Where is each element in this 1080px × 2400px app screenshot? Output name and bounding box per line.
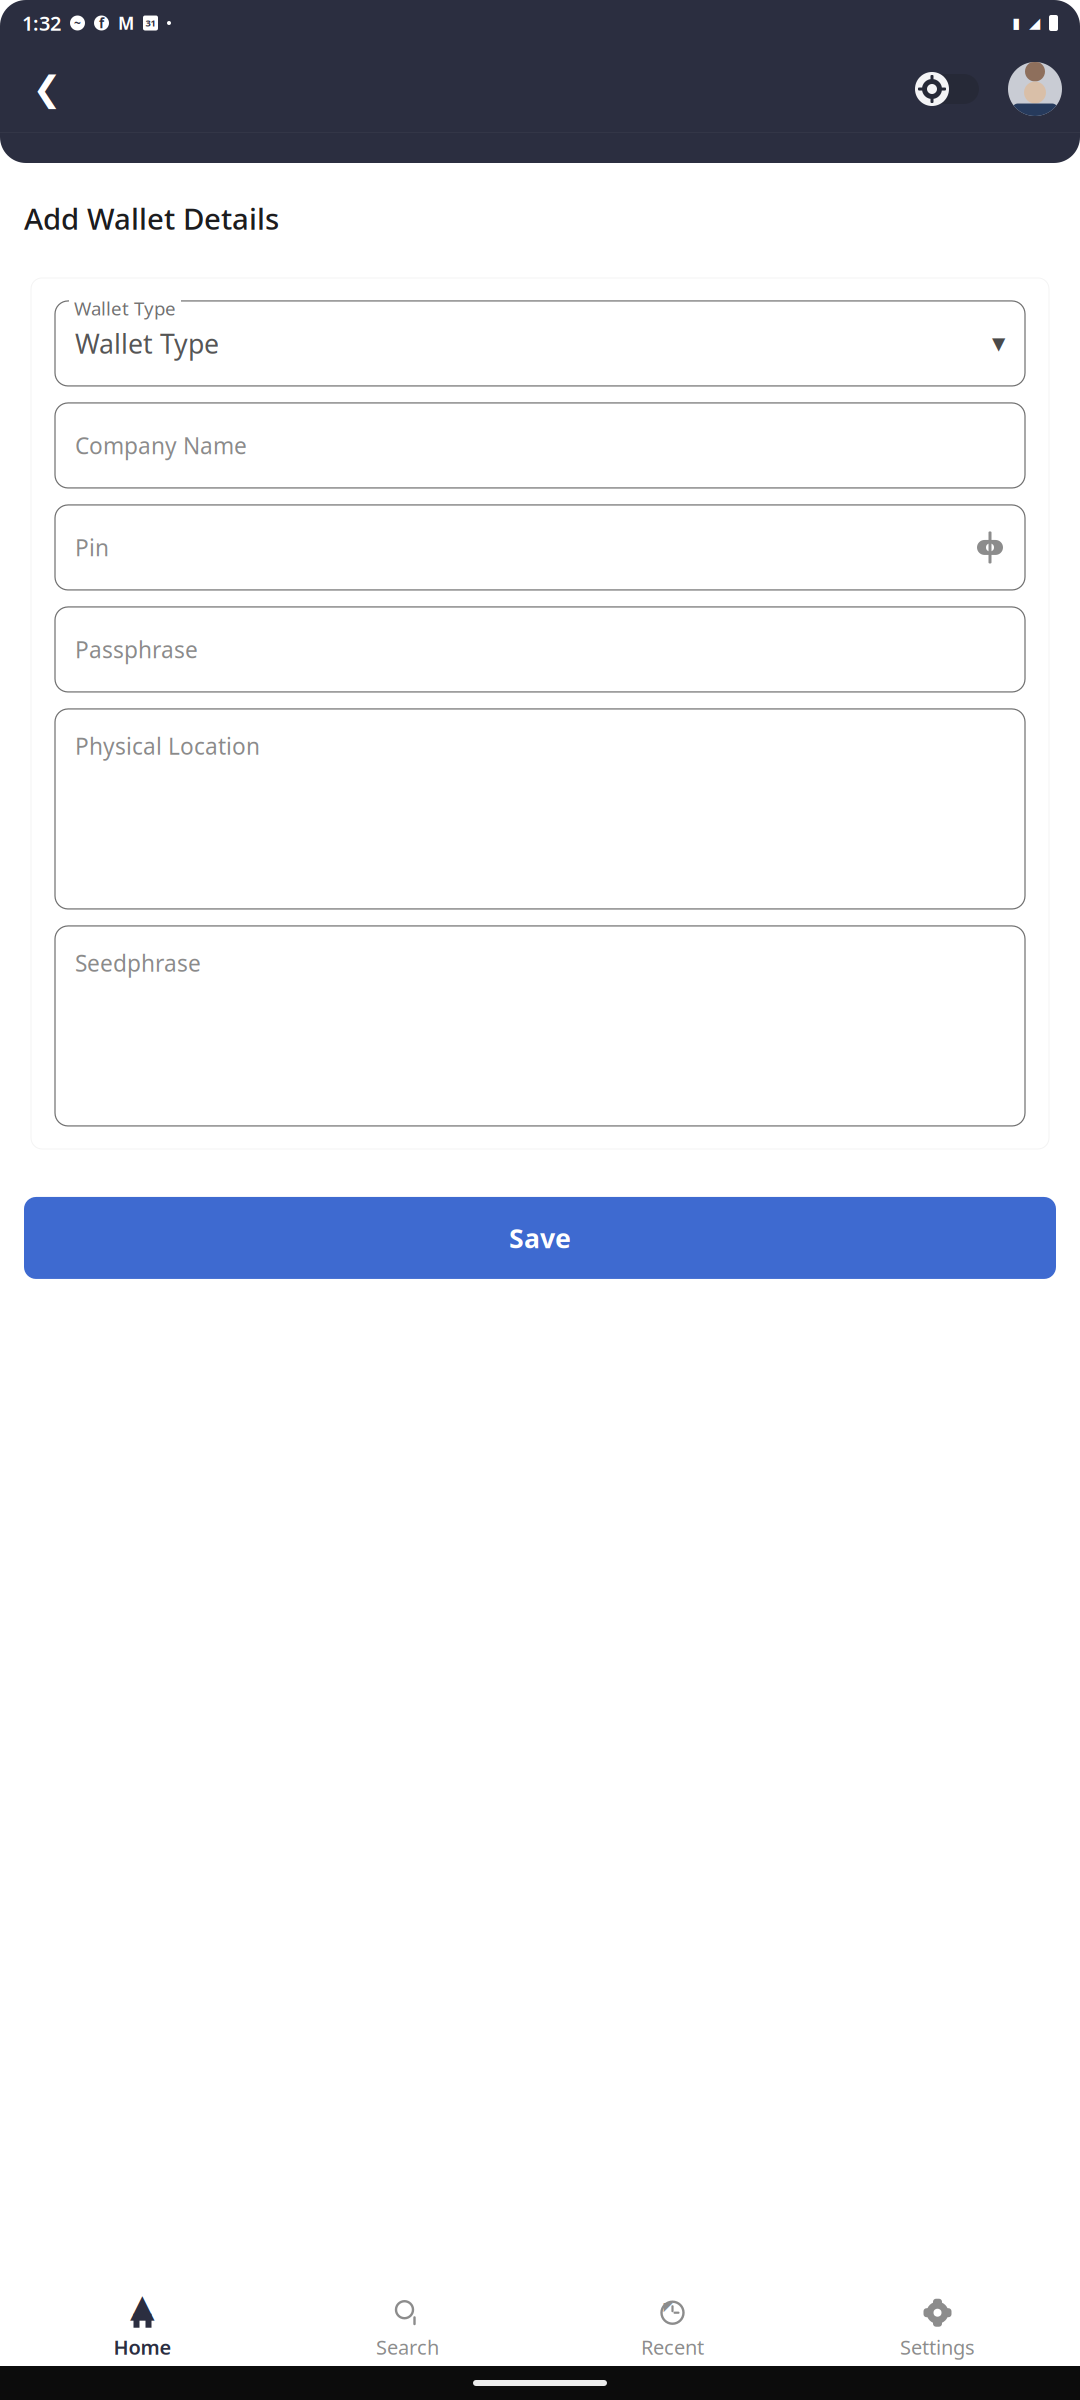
staticText: Add Wallet Details [24, 199, 279, 238]
staticText: ~ [74, 15, 81, 31]
staticText: 31 [145, 17, 155, 29]
staticText: Wallet Type [74, 296, 176, 321]
button[interactable]: Profile [1008, 62, 1062, 116]
button[interactable]: ▲ [10, 2290, 275, 2368]
staticText: 1:32 [22, 10, 61, 36]
staticText: Wallet Type [75, 326, 219, 361]
button[interactable]: Passphrase [55, 607, 1025, 692]
staticText: ❮ [32, 69, 61, 109]
staticText: Seedphrase [75, 948, 201, 978]
button[interactable]: Physical Location [55, 709, 1025, 909]
staticText: ◢ [1029, 15, 1040, 31]
staticText: f [99, 14, 104, 32]
staticText: Pin [75, 532, 109, 562]
button[interactable]: ◤ [540, 2290, 805, 2368]
staticText: Passphrase [75, 634, 198, 664]
button[interactable]: Save [24, 1197, 1056, 1279]
button[interactable]: Settings [805, 2290, 1070, 2368]
button[interactable]: Back [18, 60, 76, 118]
staticText: ◤ [663, 2300, 672, 2313]
staticText: ▮ [1012, 15, 1020, 31]
staticText: Save [509, 1220, 571, 1256]
staticText: Physical Location [75, 731, 260, 761]
staticText: Company Name [75, 430, 247, 460]
button[interactable]: Seedphrase [55, 926, 1025, 1126]
button[interactable]: Search [275, 2290, 540, 2368]
button[interactable]: Wallet Type [55, 301, 1025, 386]
staticText: Recent [641, 2334, 704, 2360]
staticText: Home [113, 2334, 171, 2360]
button[interactable]: Toggle dark mode [912, 69, 982, 109]
button[interactable]: Company Name [55, 403, 1025, 488]
staticText: ▼ [992, 334, 1005, 353]
staticText: Search [376, 2334, 439, 2360]
staticText: Settings [900, 2334, 975, 2360]
staticText: M [118, 11, 134, 34]
staticText: ▲ [130, 2288, 155, 2324]
button[interactable]: Pin [55, 505, 1025, 590]
